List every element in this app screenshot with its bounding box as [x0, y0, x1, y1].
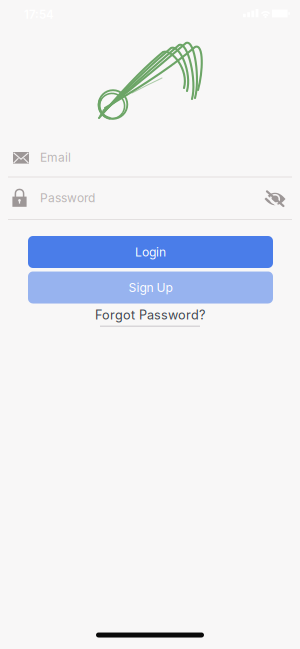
staticText: Sign Up [128, 280, 172, 295]
staticText: Login [135, 245, 166, 259]
button[interactable]: Login [28, 236, 273, 268]
button[interactable]: Sign Up [28, 271, 273, 303]
button[interactable]: Password [0, 179, 300, 217]
staticText: Forgot Password? [95, 307, 205, 323]
staticText: Email [40, 150, 71, 165]
button[interactable]: Email [0, 140, 300, 175]
button[interactable]: Forgot Password? [95, 307, 205, 327]
button[interactable]: Show password [260, 185, 290, 213]
staticText: Password [40, 191, 95, 205]
